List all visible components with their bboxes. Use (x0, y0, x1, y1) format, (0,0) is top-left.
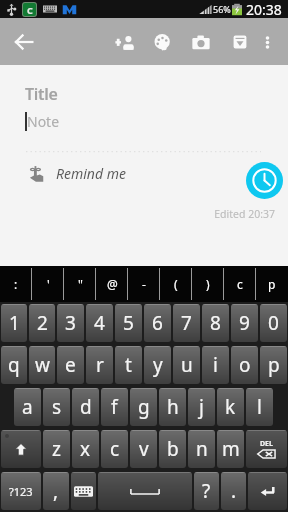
button[interactable]: Shift (1, 430, 41, 468)
staticText: ) (206, 276, 210, 292)
staticText: 8 (210, 310, 221, 336)
button[interactable]: k (217, 388, 244, 426)
staticText: t (125, 352, 132, 378)
staticText: k (225, 394, 236, 420)
button[interactable]: u (173, 346, 200, 384)
button[interactable]: ? (194, 472, 219, 510)
staticText: Remind me (56, 164, 126, 183)
button[interactable]: q (1, 346, 27, 384)
button[interactable]: w (29, 346, 55, 384)
button[interactable]: Remind me (29, 164, 126, 183)
button[interactable]: z (43, 430, 70, 468)
button[interactable]: - (128, 266, 160, 302)
button[interactable]: t (115, 346, 142, 384)
button[interactable]: 8 (202, 304, 229, 342)
button[interactable]: n (188, 430, 215, 468)
button[interactable]: i (202, 346, 229, 384)
button[interactable]: 4 (86, 304, 113, 342)
button[interactable]: ?123 (1, 472, 41, 510)
button[interactable]: 7 (173, 304, 200, 342)
staticText: 6 (152, 310, 163, 336)
button[interactable]: a (14, 388, 41, 426)
button[interactable]: v (130, 430, 157, 468)
button[interactable]: More options (248, 23, 286, 61)
button[interactable]: r (86, 346, 113, 384)
staticText: r (96, 352, 104, 378)
button[interactable]: Enter (248, 472, 287, 510)
button[interactable]: ( (160, 266, 192, 302)
button[interactable]: p (260, 346, 287, 384)
button[interactable]: m (217, 430, 244, 468)
staticText: x (80, 436, 91, 462)
button[interactable]: l (246, 388, 273, 426)
button[interactable]: Space (98, 472, 192, 510)
staticText: Title (25, 83, 58, 105)
staticText: 9 (239, 310, 250, 336)
button[interactable]: 6 (144, 304, 171, 342)
button[interactable]: b (159, 430, 186, 468)
button[interactable]: c (224, 266, 256, 302)
button[interactable]: ' (32, 266, 64, 302)
staticText: 4 (94, 310, 105, 336)
staticText: p (268, 276, 276, 292)
button[interactable]: p (256, 266, 288, 302)
button[interactable]: Delete (246, 430, 287, 468)
staticText: l (257, 394, 262, 420)
staticText: v (139, 436, 149, 462)
staticText: . (231, 478, 237, 504)
staticText: : (14, 276, 18, 292)
staticText: , (53, 478, 59, 504)
button[interactable]: Add collaborator (106, 23, 144, 61)
staticText: e (65, 352, 76, 378)
staticText: o (239, 352, 251, 378)
button[interactable]: f (101, 388, 128, 426)
button[interactable]: s (43, 388, 70, 426)
button[interactable]: . (221, 472, 246, 510)
button[interactable]: 1 (1, 304, 27, 342)
button[interactable]: Add image (182, 23, 220, 61)
button[interactable]: 0 (260, 304, 287, 342)
button[interactable]: 9 (231, 304, 258, 342)
button[interactable]: Navigate back (6, 24, 42, 60)
staticText: @ (107, 276, 118, 292)
button[interactable]: : (0, 266, 32, 302)
button[interactable]: , (43, 472, 69, 510)
staticText: f (111, 394, 118, 420)
button[interactable]: @ (96, 266, 128, 302)
staticText: 1 (9, 310, 20, 336)
staticText: g (138, 394, 150, 420)
button[interactable]: g (130, 388, 157, 426)
staticText: h (167, 394, 179, 420)
button[interactable]: c (101, 430, 128, 468)
staticText: 56% (213, 3, 231, 15)
staticText: j (199, 394, 204, 420)
staticText: - (142, 276, 146, 292)
staticText: s (52, 394, 62, 420)
staticText: a (22, 394, 33, 420)
staticText: y (153, 352, 163, 378)
button[interactable]: x (72, 430, 99, 468)
button[interactable]: 2 (29, 304, 55, 342)
button[interactable]: ) (192, 266, 224, 302)
button[interactable]: Archive (221, 23, 259, 61)
button[interactable]: 3 (57, 304, 84, 342)
staticText: d (80, 394, 92, 420)
staticText: q (8, 352, 20, 378)
staticText: z (52, 436, 61, 462)
button[interactable]: j (188, 388, 215, 426)
button[interactable]: " (64, 266, 96, 302)
button[interactable]: 5 (115, 304, 142, 342)
button[interactable]: y (144, 346, 171, 384)
button[interactable]: e (57, 346, 84, 384)
button[interactable]: Set reminder (246, 162, 283, 199)
staticText: ? (202, 478, 211, 504)
button[interactable]: Switch keyboard (71, 472, 96, 510)
staticText: c (237, 276, 243, 292)
button[interactable]: d (72, 388, 99, 426)
button[interactable]: o (231, 346, 258, 384)
staticText: c (110, 436, 120, 462)
staticText: ( (174, 276, 178, 292)
button[interactable]: Change colour (143, 23, 181, 61)
button[interactable]: h (159, 388, 186, 426)
staticText: C (27, 4, 33, 16)
